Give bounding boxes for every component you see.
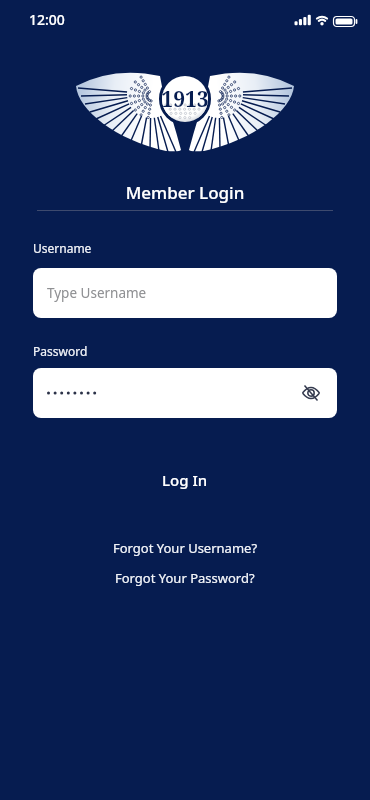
staticText: Forgot Your Password?	[115, 569, 255, 587]
button[interactable]: Type Username	[33, 268, 337, 318]
staticText: Username	[33, 240, 92, 256]
button[interactable]: Log In	[135, 460, 235, 500]
staticText: 1913	[0, 85, 370, 114]
staticText: Forgot Your Username?	[113, 539, 258, 557]
staticText: Log In	[162, 470, 208, 490]
button[interactable]	[33, 368, 337, 418]
staticText: Member Login	[0, 181, 370, 204]
button[interactable]: Forgot Your Password?	[95, 568, 275, 588]
staticText: 12:00	[29, 10, 65, 29]
staticText: Type Username	[47, 284, 147, 302]
button[interactable]: Forgot Your Username?	[95, 538, 275, 558]
staticText: Password	[33, 343, 88, 359]
